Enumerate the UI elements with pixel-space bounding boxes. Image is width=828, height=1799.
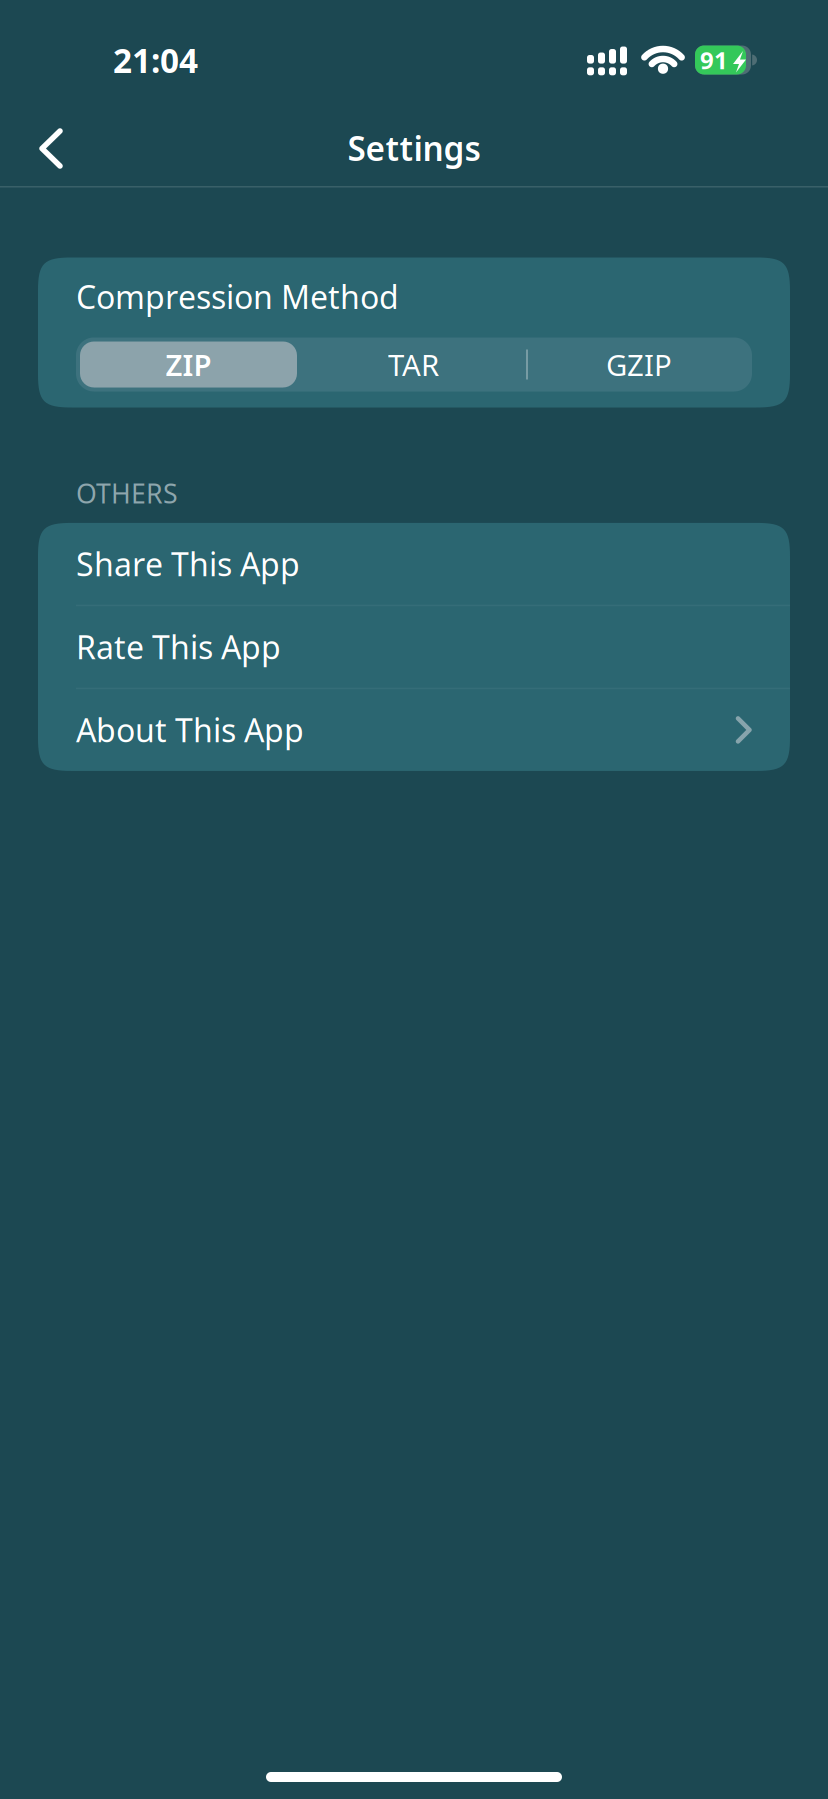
staticText: Share This App bbox=[76, 543, 300, 585]
staticText: Rate This App bbox=[76, 626, 281, 668]
button[interactable]: About This App bbox=[38, 689, 790, 771]
staticText: ZIP bbox=[165, 345, 211, 384]
button[interactable]: Share This App bbox=[38, 523, 790, 605]
button[interactable]: Rate This App bbox=[38, 606, 790, 688]
button[interactable]: Back bbox=[0, 108, 90, 188]
button[interactable]: ZIP bbox=[76, 337, 301, 391]
staticText: GZIP bbox=[606, 345, 672, 384]
staticText: Settings bbox=[347, 126, 480, 170]
staticText: About This App bbox=[76, 709, 304, 751]
staticText: 21:04 bbox=[113, 38, 198, 82]
button[interactable]: GZIP bbox=[526, 337, 752, 391]
staticText: OTHERS bbox=[76, 475, 178, 511]
staticText: Compression Method bbox=[76, 275, 399, 318]
staticText: 91 bbox=[700, 44, 728, 76]
staticText: TAR bbox=[388, 345, 439, 384]
button[interactable]: TAR bbox=[301, 337, 526, 391]
